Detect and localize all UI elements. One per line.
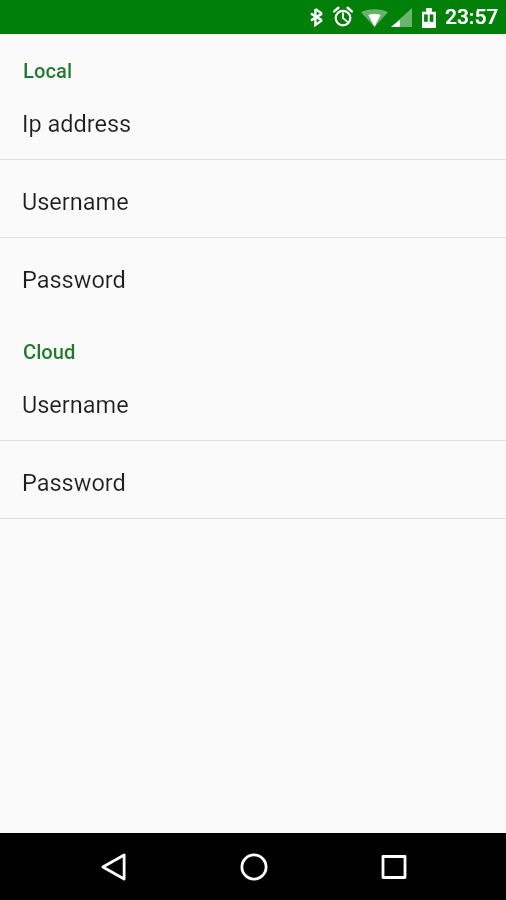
button[interactable]: Back bbox=[80, 833, 147, 900]
staticText: Cloud bbox=[23, 340, 76, 364]
staticText: Ip address bbox=[22, 110, 132, 138]
button[interactable]: Username bbox=[0, 160, 506, 237]
staticText: Username bbox=[22, 391, 129, 419]
staticText: Username bbox=[22, 188, 129, 216]
button[interactable]: Username bbox=[0, 363, 506, 440]
staticText: Local bbox=[23, 59, 73, 83]
button[interactable]: Ip address bbox=[0, 82, 506, 159]
button[interactable]: Password bbox=[0, 441, 506, 518]
button[interactable]: Password bbox=[0, 238, 506, 315]
staticText: Password bbox=[22, 266, 126, 294]
button[interactable]: Home bbox=[220, 833, 287, 900]
staticText: Password bbox=[22, 469, 126, 497]
staticText: 23:57 bbox=[445, 5, 499, 30]
button[interactable]: Recents bbox=[360, 833, 427, 900]
